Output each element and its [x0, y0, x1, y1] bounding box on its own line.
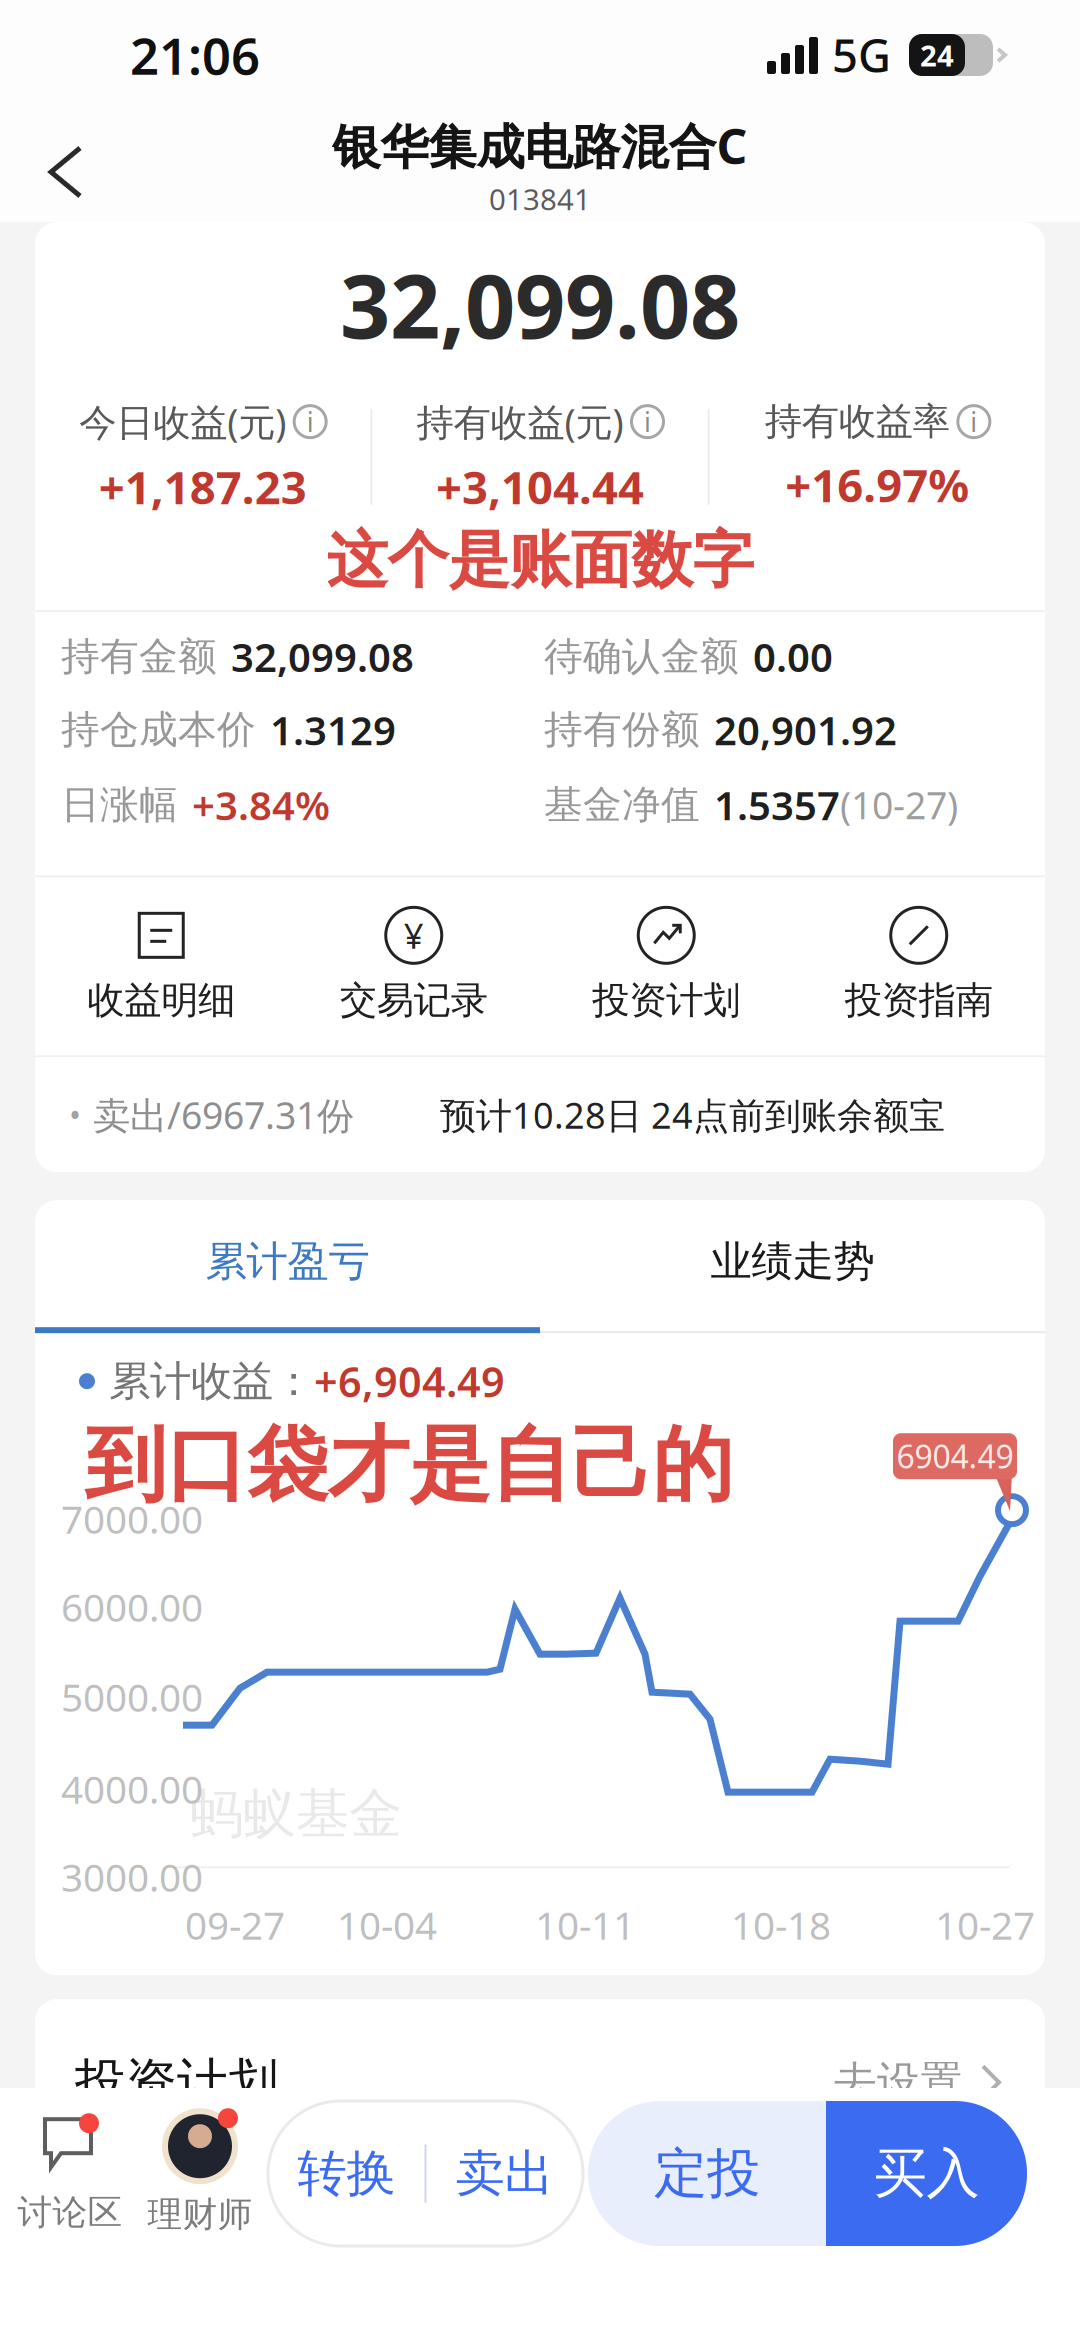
staticText: 业绩走势: [710, 1236, 874, 1287]
staticText: 10-11: [535, 1899, 635, 1950]
staticText: •: [69, 1093, 81, 1136]
staticText: 5G: [832, 25, 891, 85]
staticText: 013841: [489, 179, 591, 218]
staticText: 20,901.92: [714, 703, 897, 756]
button[interactable]: Back: [0, 110, 118, 222]
staticText: 基金净值: [544, 781, 700, 828]
staticText: +3,104.44: [436, 456, 644, 517]
button[interactable]: 讨论区: [5, 2101, 135, 2246]
staticText: 21:06: [130, 21, 260, 89]
staticText: 今日收益(元): [79, 397, 286, 446]
staticText: 6904.49: [896, 1435, 1013, 1477]
staticText: 10-27: [935, 1899, 1035, 1950]
staticText: 6000.00: [61, 1581, 203, 1632]
staticText: 投资计划: [592, 977, 740, 1023]
button[interactable]: 投资指南: [792, 907, 1045, 1023]
staticText: (10-27): [840, 780, 958, 830]
staticText: 1.3129: [270, 703, 396, 756]
staticText: 待确认金额: [544, 633, 739, 680]
staticText: 4000.00: [61, 1763, 203, 1814]
staticText: 1.5357: [714, 778, 840, 831]
button[interactable]: 累计盈亏: [35, 1200, 540, 1333]
staticText: 32,099.08: [231, 630, 414, 683]
staticText: 累计收益：: [109, 1356, 314, 1407]
staticText: 卖出/6967.31份: [93, 1090, 354, 1139]
staticText: i: [644, 404, 651, 439]
staticText: +3.84%: [192, 778, 330, 831]
staticText: 持有收益(元): [416, 397, 623, 446]
staticText: 持有收益率: [765, 399, 950, 445]
button[interactable]: 投资计划: [540, 907, 792, 1023]
button[interactable]: 定投: [588, 2101, 826, 2246]
staticText: 持仓成本价: [61, 706, 256, 753]
staticText: 转换: [297, 2143, 395, 2204]
staticText: ¥: [404, 912, 424, 958]
staticText: 持有金额: [61, 633, 217, 680]
staticText: 去设置: [834, 2056, 963, 2108]
staticText: 0.00: [753, 630, 833, 683]
staticText: 蚂蚁基金: [190, 1781, 402, 1847]
staticText: 10-04: [337, 1899, 437, 1950]
button[interactable]: 理财师: [135, 2101, 265, 2246]
button[interactable]: 业绩走势: [540, 1200, 1045, 1333]
staticText: +1,187.23: [99, 456, 307, 517]
staticText: 买入: [873, 2141, 979, 2206]
staticText: 定投: [654, 2141, 760, 2206]
button[interactable]: 买入: [826, 2101, 1027, 2246]
staticText: 7000.00: [61, 1493, 203, 1544]
staticText: +6,904.49: [314, 1354, 505, 1409]
staticText: 这个是账面数字: [326, 523, 753, 598]
button[interactable]: 收益明细: [35, 907, 287, 1023]
staticText: 理财师: [147, 2193, 252, 2236]
staticText: 5000.00: [61, 1671, 203, 1722]
button[interactable]: 卖出: [426, 2101, 582, 2246]
staticText: 32,099.08: [340, 246, 740, 363]
staticText: 收益明细: [87, 977, 235, 1023]
staticText: +16.97%: [785, 455, 969, 515]
button[interactable]: ¥: [287, 907, 540, 1023]
staticText: 银华集成电路混合C: [332, 114, 747, 177]
staticText: 到口袋才是自己的: [85, 1415, 733, 1515]
staticText: 交易记录: [340, 977, 488, 1023]
staticText: i: [970, 404, 977, 439]
staticText: 09-27: [185, 1899, 285, 1950]
staticText: 预计10.28日 24点前到账余额宝: [440, 1091, 945, 1139]
staticText: 卖出: [455, 2143, 553, 2204]
staticText: 3000.00: [61, 1851, 203, 1902]
staticText: 累计盈亏: [205, 1236, 369, 1287]
staticText: 投资计划: [75, 2051, 279, 2113]
staticText: 讨论区: [17, 2191, 122, 2234]
staticText: 10-18: [731, 1899, 831, 1950]
staticText: 日涨幅: [61, 781, 178, 828]
staticText: 持有份额: [544, 706, 700, 753]
button[interactable]: 转换: [268, 2101, 424, 2246]
staticText: i: [307, 404, 314, 439]
staticText: 投资指南: [845, 977, 993, 1023]
staticText: 24: [920, 35, 954, 74]
